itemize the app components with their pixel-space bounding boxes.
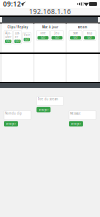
staticText: GO (15, 40, 19, 43)
staticText: Start (73, 31, 78, 35)
button[interactable]: GO (70, 36, 81, 39)
button[interactable]: GO (51, 36, 62, 39)
staticText: Voir (24, 33, 30, 37)
button[interactable]: GO (24, 38, 30, 41)
staticText: Jeu (54, 31, 59, 35)
staticText: GO (25, 38, 29, 41)
staticText: Clips / Replay (7, 25, 27, 29)
staticText: Titre (40, 31, 46, 35)
staticText: GO (73, 36, 77, 39)
staticText: Envoyer (71, 122, 81, 125)
staticText: Stream (77, 25, 87, 29)
staticText: Lister (15, 31, 20, 39)
staticText: Message (70, 112, 81, 115)
button[interactable]: GO (5, 40, 11, 43)
button[interactable]: Envoyer (36, 107, 50, 112)
staticText: Titre du stream (37, 97, 57, 101)
staticText: Nom du clip (5, 112, 22, 115)
staticText: Envoyer (6, 122, 16, 125)
staticText: GO (87, 36, 91, 39)
button[interactable]: GO (37, 36, 48, 39)
staticText: Stop (86, 31, 92, 35)
button[interactable]: Envoyer (69, 121, 83, 126)
staticText: GO (55, 36, 59, 39)
staticText: Envoyer (38, 108, 48, 111)
staticText: Mise à jour (42, 25, 58, 29)
staticText: 192.168.1.16 (29, 7, 71, 16)
button[interactable]: Envoyer (4, 121, 18, 126)
staticText: GO (41, 36, 45, 39)
button[interactable]: GO (14, 40, 21, 43)
staticText: GO (6, 40, 10, 43)
staticText: Ajouter (5, 31, 11, 39)
staticText: 09:12 (3, 0, 21, 8)
button[interactable]: GO (84, 36, 95, 39)
